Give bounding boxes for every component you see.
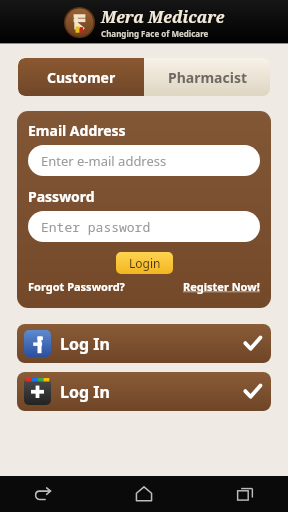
other: Log in with Facebook	[24, 330, 51, 357]
staticText: Mera Medicare	[101, 6, 225, 28]
staticText: Enter e-mail address	[41, 152, 167, 170]
staticText: Log In	[60, 333, 110, 355]
staticText: Log In	[60, 381, 110, 403]
other: Log in with Google Plus	[24, 378, 51, 405]
staticText: Enter password	[41, 218, 151, 236]
staticText: Email Address	[28, 121, 126, 140]
button[interactable]: Enter e-mail address	[28, 145, 260, 176]
button[interactable]: Back	[26, 477, 60, 511]
staticText: Changing Face of Medicare	[101, 28, 209, 39]
button[interactable]: Login	[116, 252, 173, 274]
button[interactable]: Register Now!	[183, 279, 260, 294]
staticText: Pharmacist	[168, 68, 247, 87]
staticText: Customer	[47, 68, 116, 87]
button[interactable]: Recent apps	[228, 477, 262, 511]
button[interactable]: Log in with Facebook	[17, 324, 271, 363]
button[interactable]: Home	[127, 477, 161, 511]
staticText: Login	[129, 255, 161, 271]
button[interactable]: Enter password	[28, 211, 260, 242]
button[interactable]: Log in with Google Plus	[17, 372, 271, 411]
button[interactable]: Pharmacist	[144, 58, 270, 96]
button[interactable]: Customer	[18, 58, 144, 96]
button[interactable]: Forgot Password?	[28, 279, 125, 294]
staticText: Password	[28, 187, 95, 206]
